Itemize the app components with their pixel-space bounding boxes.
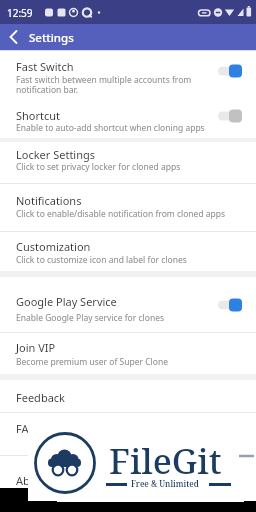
staticText: 12:59 [7,6,33,20]
staticText: Shortcut [16,108,61,123]
staticText: Click to customize icon and label for cl… [16,254,187,266]
staticText: Click to enable/disable notification fro… [16,208,226,220]
button[interactable] [0,140,256,183]
staticText: Locker Settings [16,147,96,162]
staticText: Become premium user of Super Clone [16,356,168,368]
staticText: Enable Google Play service for clones [16,312,165,324]
button[interactable] [0,231,256,276]
staticText: About [16,473,48,488]
button[interactable] [0,183,256,231]
staticText: Feedback [16,390,65,405]
staticText: Settings [29,30,74,46]
staticText: Enable to auto-add shortcut when cloning… [16,122,205,134]
button[interactable] [0,332,256,377]
staticText: Google Play Service [16,294,117,309]
staticText: Notifications [16,193,82,208]
button[interactable] [0,412,256,455]
button[interactable] [0,377,256,412]
button[interactable] [0,455,256,501]
staticText: FAQ [16,421,37,436]
staticText: Customization [16,239,91,254]
button[interactable] [0,276,256,332]
staticText: Click to set privacy locker for cloned a… [16,161,181,173]
button[interactable] [0,50,256,140]
staticText: Fast switch between multiple accounts fr… [16,74,192,86]
staticText: FileGit [109,437,222,485]
staticText: Fast Switch [16,59,74,74]
button[interactable] [2,25,26,49]
staticText: Free & Unlimited [131,478,199,489]
staticText: notification bar. [16,84,78,96]
staticText: Join VIP [16,340,56,355]
